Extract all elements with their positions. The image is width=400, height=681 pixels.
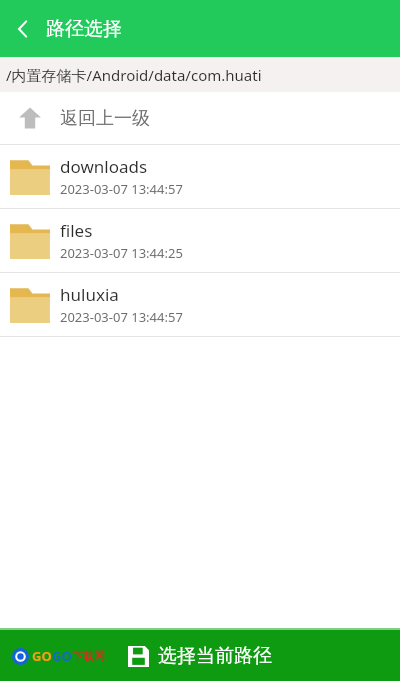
staticText: GO: [32, 647, 52, 665]
staticText: GO: [52, 647, 72, 665]
staticText: 2023-03-07 13:44:57: [60, 180, 183, 198]
button[interactable]: huluxia: [0, 273, 400, 336]
button[interactable]: GO: [0, 630, 400, 681]
button[interactable]: Back: [0, 0, 46, 57]
staticText: 返回上一级: [60, 107, 150, 130]
button[interactable]: files: [0, 209, 400, 272]
staticText: 路径选择: [46, 17, 122, 41]
staticText: 2023-03-07 13:44:57: [60, 308, 183, 326]
staticText: 下载网: [72, 649, 105, 663]
button[interactable]: downloads: [0, 145, 400, 208]
staticText: huluxia: [60, 283, 119, 306]
staticText: 选择当前路径: [158, 644, 272, 668]
staticText: /内置存储卡/Android/data/com.huati: [6, 65, 262, 85]
button[interactable]: /内置存储卡/Android/data/com.huati: [0, 57, 400, 92]
button[interactable]: 返回上一级: [0, 92, 400, 144]
staticText: downloads: [60, 155, 148, 178]
staticText: 2023-03-07 13:44:25: [60, 244, 183, 262]
staticText: files: [60, 219, 93, 242]
